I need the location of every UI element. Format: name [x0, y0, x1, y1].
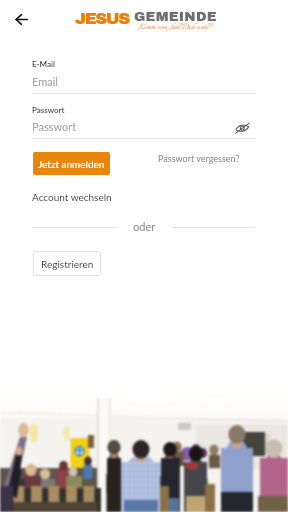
staticText: Passwort vergessen?: [158, 153, 240, 164]
staticText: Passwort: [32, 105, 65, 115]
button[interactable]: Registrieren: [33, 251, 101, 276]
staticText: Email: [32, 75, 58, 88]
staticText: Passwort: [32, 120, 77, 133]
staticText: Komm rein, fühl Dich wohl!: [138, 21, 212, 33]
button[interactable]: Account wechseln: [32, 191, 112, 203]
staticText: Registrieren: [41, 258, 94, 270]
staticText: oder: [133, 220, 156, 233]
button[interactable]: Back: [8, 6, 36, 34]
staticText: Account wechseln: [32, 191, 112, 203]
button[interactable]: Show password: [233, 118, 255, 140]
button[interactable]: Passwort vergessen?: [158, 153, 240, 164]
button[interactable]: Jetzt anmelden: [33, 152, 110, 175]
staticText: Jetzt anmelden: [38, 158, 105, 170]
staticText: E-Mail: [32, 59, 55, 69]
staticText: GEMEINDE: [134, 9, 217, 24]
staticText: JESUS: [75, 9, 129, 27]
